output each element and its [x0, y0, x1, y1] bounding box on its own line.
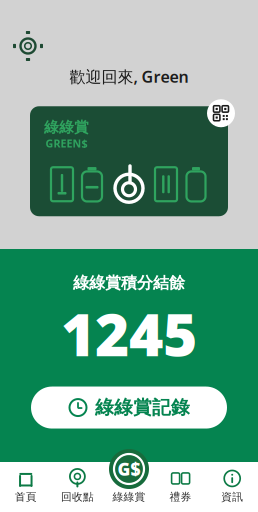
- staticText: G$: [117, 457, 140, 480]
- staticText: 綠綠賞: [44, 118, 89, 136]
- staticText: 禮券: [170, 490, 192, 503]
- staticText: 綠綠賞記錄: [95, 396, 190, 419]
- button[interactable]: Show QR code: [207, 99, 235, 127]
- staticText: 歡迎回來, Green: [69, 66, 188, 87]
- button[interactable]: 回收點: [52, 463, 103, 510]
- button[interactable]: GREEN$ rewards: [108, 448, 150, 490]
- staticText: GREEN$: [45, 136, 87, 150]
- button[interactable]: 首頁: [0, 463, 52, 510]
- button[interactable]: 綠綠賞記錄: [31, 387, 227, 429]
- button[interactable]: 禮券: [155, 463, 206, 510]
- staticText: 1245: [61, 295, 197, 373]
- staticText: 首頁: [15, 490, 37, 503]
- button[interactable]: Settings: [12, 30, 44, 62]
- button[interactable]: 綠綠賞: [103, 463, 155, 510]
- staticText: 綠綠賞積分結餘: [73, 273, 185, 293]
- staticText: 資訊: [221, 490, 243, 503]
- staticText: 綠綠賞: [112, 490, 145, 503]
- staticText: 回收點: [61, 490, 94, 503]
- button[interactable]: 資訊: [206, 463, 258, 510]
